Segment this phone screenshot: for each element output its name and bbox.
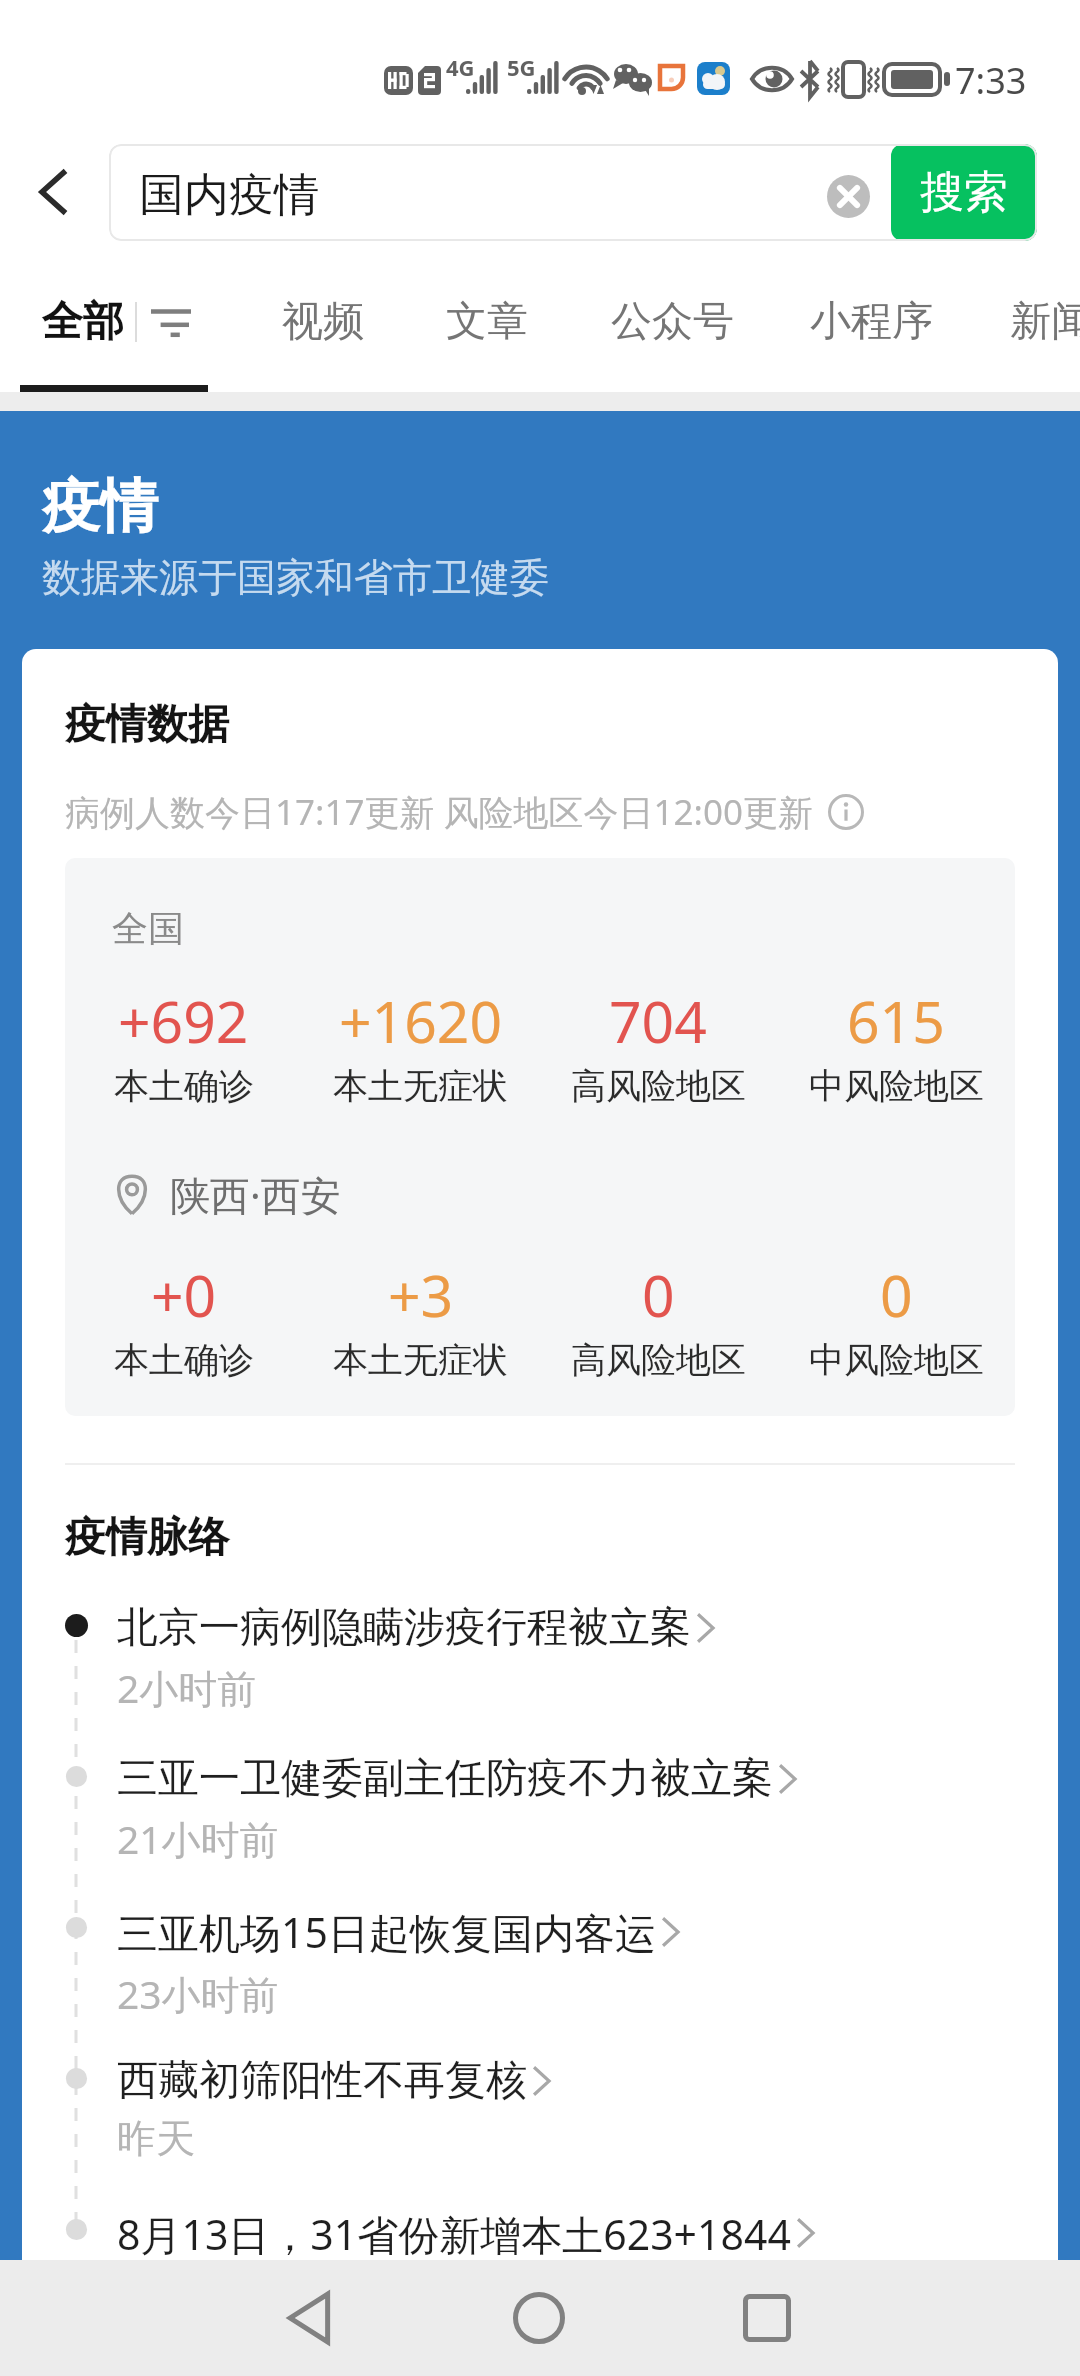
staticText: 本土确诊 <box>114 1338 254 1382</box>
staticText: 西藏初筛阳性不再复核 <box>117 2055 527 2107</box>
button[interactable]: 陕西·西安 <box>65 1167 1015 1222</box>
button[interactable]: 全部 <box>42 296 191 348</box>
staticText: +692 <box>118 982 249 1060</box>
button[interactable]: Back <box>0 133 109 266</box>
button[interactable]: 搜索 <box>891 144 1037 241</box>
staticText: 疫情脉络 <box>65 1512 229 1564</box>
staticText: 北京一病例隐瞒涉疫行程被立案 <box>117 1602 691 1654</box>
staticText: 陕西·西安 <box>170 1167 341 1222</box>
staticText: 全国 <box>112 906 184 951</box>
staticText: 8月13日，31省份新增本土623+1844 <box>117 2206 791 2260</box>
button[interactable]: 视频 <box>282 296 364 348</box>
button[interactable]: Info <box>826 792 866 832</box>
button[interactable]: 8月13日，31省份新增本土623+1844 <box>22 2206 1058 2260</box>
staticText: 0 <box>880 1256 913 1334</box>
staticText: 三亚机场15日起恢复国内客运 <box>117 1904 656 1960</box>
staticText: 三亚一卫健委副主任防疫不力被立案 <box>117 1753 773 1805</box>
staticText: 文章 <box>446 296 528 348</box>
staticText: 昨天 <box>117 2114 195 2163</box>
staticText: 全部 <box>42 296 124 348</box>
staticText: 视频 <box>282 296 364 348</box>
staticText: +0 <box>151 1256 217 1334</box>
staticText: 0 <box>642 1256 675 1334</box>
button[interactable]: 三亚一卫健委副主任防疫不力被立案 <box>22 1753 1058 1904</box>
staticText: 7:33 <box>955 56 1027 105</box>
staticText: 搜索 <box>920 165 1008 220</box>
staticText: 615 <box>847 982 945 1060</box>
button[interactable]: 公众号 <box>611 296 734 348</box>
staticText: 23小时前 <box>117 1967 279 2020</box>
staticText: 数据来源于国家和省市卫健委 <box>42 553 549 602</box>
staticText: 21小时前 <box>117 1812 279 1865</box>
staticText: 本土无症状 <box>333 1338 508 1382</box>
staticText: 4G <box>446 52 475 82</box>
button[interactable]: Back <box>251 2260 371 2376</box>
button[interactable]: 三亚机场15日起恢复国内客运 <box>22 1904 1058 2055</box>
staticText: 新闻 <box>1010 296 1080 348</box>
staticText: +3 <box>388 1256 454 1334</box>
staticText: +1620 <box>339 982 503 1060</box>
staticText: 中风险地区 <box>809 1338 984 1382</box>
button[interactable]: 北京一病例隐瞒涉疫行程被立案 <box>22 1602 1058 1753</box>
staticText: 704 <box>609 982 707 1060</box>
staticText: 中风险地区 <box>809 1064 984 1108</box>
staticText: 5G <box>507 52 536 82</box>
staticText: 国内疫情 <box>139 167 319 224</box>
staticText: 本土无症状 <box>333 1064 508 1108</box>
staticText: 疫情数据 <box>65 699 229 751</box>
button[interactable]: 文章 <box>446 296 528 348</box>
staticText: 病例人数今日17:17更新 风险地区今日12:00更新 <box>65 788 814 836</box>
button[interactable]: 西藏初筛阳性不再复核 <box>22 2055 1058 2206</box>
staticText: 小程序 <box>810 296 933 348</box>
button[interactable]: Clear <box>817 165 879 227</box>
button[interactable]: 小程序 <box>810 296 933 348</box>
button[interactable]: 新闻 <box>1010 296 1080 348</box>
staticText: 本土确诊 <box>114 1064 254 1108</box>
button[interactable]: Recent apps <box>707 2260 827 2376</box>
staticText: 公众号 <box>611 296 734 348</box>
staticText: 2小时前 <box>117 1661 257 1714</box>
button[interactable]: Home <box>479 2260 599 2376</box>
staticText: 疫情 <box>42 470 158 543</box>
staticText: 高风险地区 <box>571 1064 746 1108</box>
staticText: 高风险地区 <box>571 1338 746 1382</box>
